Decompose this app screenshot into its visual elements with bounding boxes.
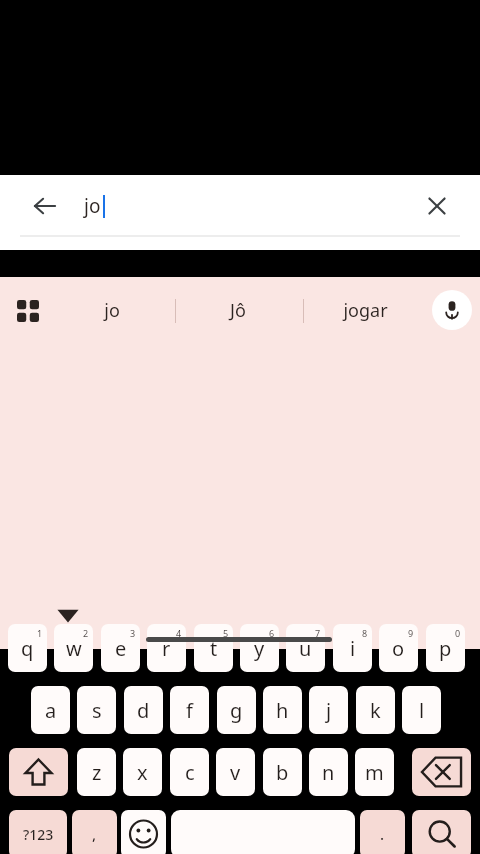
staticText: n: [322, 759, 335, 786]
button[interactable]: v: [216, 748, 255, 796]
staticText: .: [380, 824, 385, 844]
button[interactable]: n: [309, 748, 348, 796]
button[interactable]: z: [77, 748, 116, 796]
staticText: d: [137, 697, 150, 724]
staticText: ?123: [23, 825, 54, 844]
staticText: ,: [92, 824, 97, 844]
button[interactable]: Voice input: [432, 290, 472, 330]
staticText: 8: [362, 627, 368, 639]
staticText: a: [45, 697, 57, 724]
staticText: jo: [84, 193, 101, 219]
staticText: u: [299, 635, 312, 662]
staticText: q: [21, 635, 34, 662]
staticText: c: [185, 759, 195, 786]
button[interactable]: Backspace: [412, 748, 471, 796]
button[interactable]: x: [123, 748, 162, 796]
button[interactable]: t: [194, 624, 233, 672]
button[interactable]: r: [147, 624, 186, 672]
staticText: jo: [104, 298, 120, 323]
staticText: p: [439, 635, 452, 662]
staticText: f: [186, 697, 193, 724]
staticText: h: [276, 697, 289, 724]
button[interactable]: ?123: [9, 810, 67, 854]
staticText: e: [115, 635, 127, 662]
button[interactable]: Space: [171, 810, 355, 854]
button[interactable]: Clipboard and tools: [8, 291, 48, 331]
staticText: w: [66, 635, 82, 662]
button[interactable]: i: [333, 624, 372, 672]
button[interactable]: g: [217, 686, 256, 734]
button[interactable]: u: [286, 624, 325, 672]
staticText: 7: [315, 627, 321, 639]
button[interactable]: b: [263, 748, 302, 796]
button[interactable]: Clear: [418, 187, 456, 225]
staticText: 9: [408, 627, 414, 639]
staticText: jogar: [343, 298, 388, 323]
staticText: t: [210, 635, 218, 662]
button[interactable]: Emoji: [121, 810, 166, 854]
button[interactable]: jo: [54, 277, 170, 344]
staticText: 6: [269, 627, 275, 639]
button[interactable]: l: [402, 686, 441, 734]
button[interactable]: k: [356, 686, 395, 734]
button[interactable]: w: [54, 624, 93, 672]
staticText: j: [326, 697, 332, 724]
button[interactable]: a: [31, 686, 70, 734]
staticText: m: [365, 759, 384, 786]
button[interactable]: e: [101, 624, 140, 672]
button[interactable]: h: [263, 686, 302, 734]
button[interactable]: ,: [72, 810, 117, 854]
button[interactable]: Back: [26, 187, 64, 225]
button[interactable]: y: [240, 624, 279, 672]
staticText: 0: [455, 627, 461, 639]
button[interactable]: s: [77, 686, 116, 734]
staticText: 5: [223, 627, 229, 639]
button[interactable]: Hide keyboard: [50, 601, 86, 629]
button[interactable]: Shift: [9, 748, 68, 796]
staticText: 2: [83, 627, 89, 639]
staticText: s: [92, 697, 102, 724]
staticText: g: [230, 697, 243, 724]
button[interactable]: q: [8, 624, 47, 672]
staticText: l: [419, 697, 425, 724]
button[interactable]: m: [355, 748, 394, 796]
button[interactable]: p: [426, 624, 465, 672]
button[interactable]: d: [124, 686, 163, 734]
button[interactable]: Search: [412, 810, 471, 854]
staticText: b: [276, 759, 289, 786]
staticText: v: [230, 759, 241, 786]
button[interactable]: o: [379, 624, 418, 672]
staticText: 4: [176, 627, 182, 639]
staticText: 3: [130, 627, 136, 639]
staticText: y: [254, 635, 265, 662]
staticText: r: [162, 635, 171, 662]
button[interactable]: j: [309, 686, 348, 734]
button[interactable]: c: [170, 748, 209, 796]
staticText: x: [137, 759, 148, 786]
staticText: z: [92, 759, 102, 786]
staticText: i: [350, 635, 356, 662]
staticText: k: [370, 697, 381, 724]
button[interactable]: jogar: [307, 277, 423, 344]
button[interactable]: .: [360, 810, 405, 854]
staticText: o: [392, 635, 405, 662]
staticText: Jô: [230, 298, 246, 323]
staticText: 1: [37, 627, 43, 639]
button[interactable]: Jô: [180, 277, 296, 344]
button[interactable]: f: [170, 686, 209, 734]
